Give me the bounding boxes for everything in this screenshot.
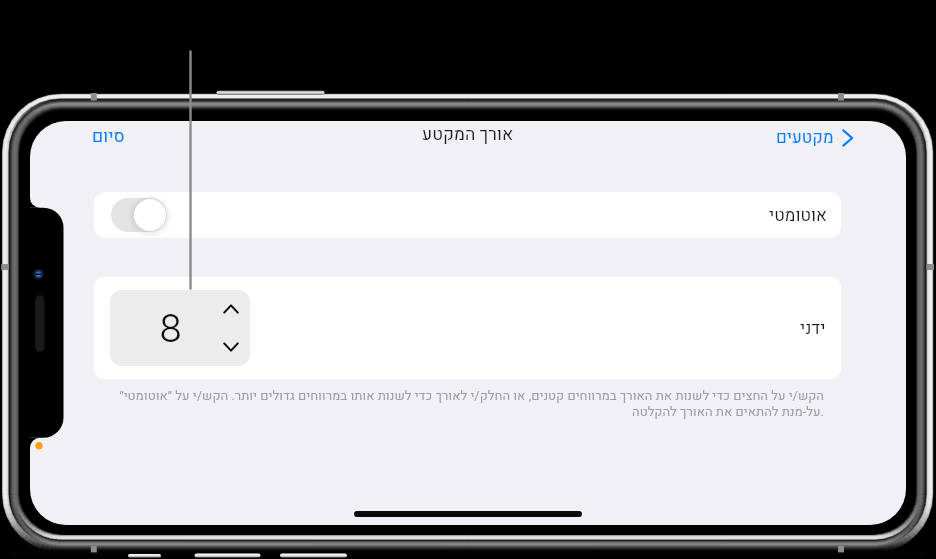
button[interactable]: אוטומטי — [94, 192, 841, 238]
button[interactable]: Automatic toggle — [111, 198, 167, 232]
button[interactable]: מקטעים — [776, 125, 853, 150]
staticText: ידני — [800, 316, 826, 341]
staticText: 8 — [159, 305, 183, 351]
staticText: אוטומטי — [769, 203, 827, 228]
staticText: סיום — [92, 124, 125, 150]
button[interactable]: Increase length — [217, 295, 245, 323]
staticText: מקטעים — [776, 125, 834, 150]
button[interactable]: סיום — [92, 124, 125, 150]
staticText: אורך המקטע — [422, 122, 514, 148]
button[interactable]: Decrease length — [217, 333, 245, 361]
staticText: הקש/י על החצים כדי לשנות את האורך במרווח… — [115, 386, 824, 422]
